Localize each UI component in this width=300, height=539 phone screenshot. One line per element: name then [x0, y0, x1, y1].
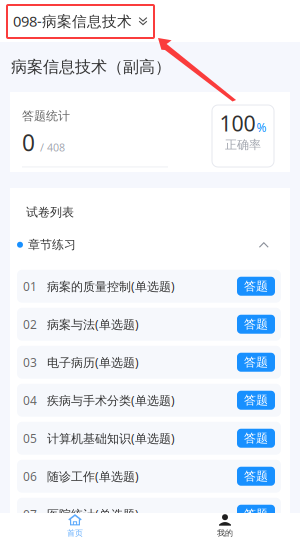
- staticText: 答题: [244, 393, 268, 408]
- staticText: %: [256, 119, 266, 135]
- staticText: 答题: [244, 507, 268, 522]
- staticText: 计算机基础知识(单选题): [47, 430, 175, 446]
- staticText: 试卷列表: [26, 205, 74, 220]
- staticText: 答题: [244, 317, 268, 332]
- staticText: 01: [23, 278, 37, 294]
- button[interactable]: 07: [10, 498, 290, 536]
- button[interactable]: 04: [10, 384, 290, 422]
- staticText: 疾病与手术分类(单选题): [47, 392, 175, 408]
- button[interactable]: 098-病案信息技术: [0, 6, 157, 36]
- button[interactable]: 06: [10, 460, 290, 498]
- staticText: 100: [219, 109, 255, 137]
- button[interactable]: 02: [10, 308, 290, 346]
- staticText: 病案的质量控制(单选题): [47, 278, 175, 294]
- staticText: 答题统计: [22, 109, 70, 123]
- button[interactable]: 章节练习: [10, 220, 290, 270]
- staticText: 我的: [217, 528, 233, 538]
- staticText: 病案信息技术（副高）: [11, 57, 171, 77]
- staticText: 答题: [244, 469, 268, 484]
- staticText: 答题: [244, 431, 268, 446]
- button[interactable]: 首页: [0, 513, 150, 539]
- staticText: 03: [23, 354, 37, 370]
- staticText: 答题: [244, 355, 268, 370]
- staticText: 04: [23, 392, 37, 408]
- staticText: 05: [23, 430, 37, 446]
- staticText: 答题: [244, 279, 268, 294]
- staticText: 章节练习: [28, 237, 76, 252]
- staticText: 首页: [67, 528, 83, 538]
- staticText: 医院统计(单选题): [47, 506, 139, 522]
- staticText: 正确率: [225, 137, 261, 152]
- staticText: 098-病案信息技术: [13, 11, 132, 31]
- staticText: 07: [23, 506, 37, 522]
- button[interactable]: 03: [10, 346, 290, 384]
- staticText: 02: [23, 316, 37, 332]
- staticText: 随诊工作(单选题): [47, 468, 139, 484]
- staticText: 电子病历(单选题): [47, 354, 139, 370]
- button[interactable]: 05: [10, 422, 290, 460]
- button[interactable]: 01: [10, 270, 290, 308]
- button[interactable]: 我的: [150, 513, 300, 539]
- staticText: / 408: [40, 140, 65, 154]
- staticText: 06: [23, 468, 37, 484]
- staticText: 病案与法(单选题): [47, 316, 139, 332]
- staticText: 0: [22, 127, 35, 157]
